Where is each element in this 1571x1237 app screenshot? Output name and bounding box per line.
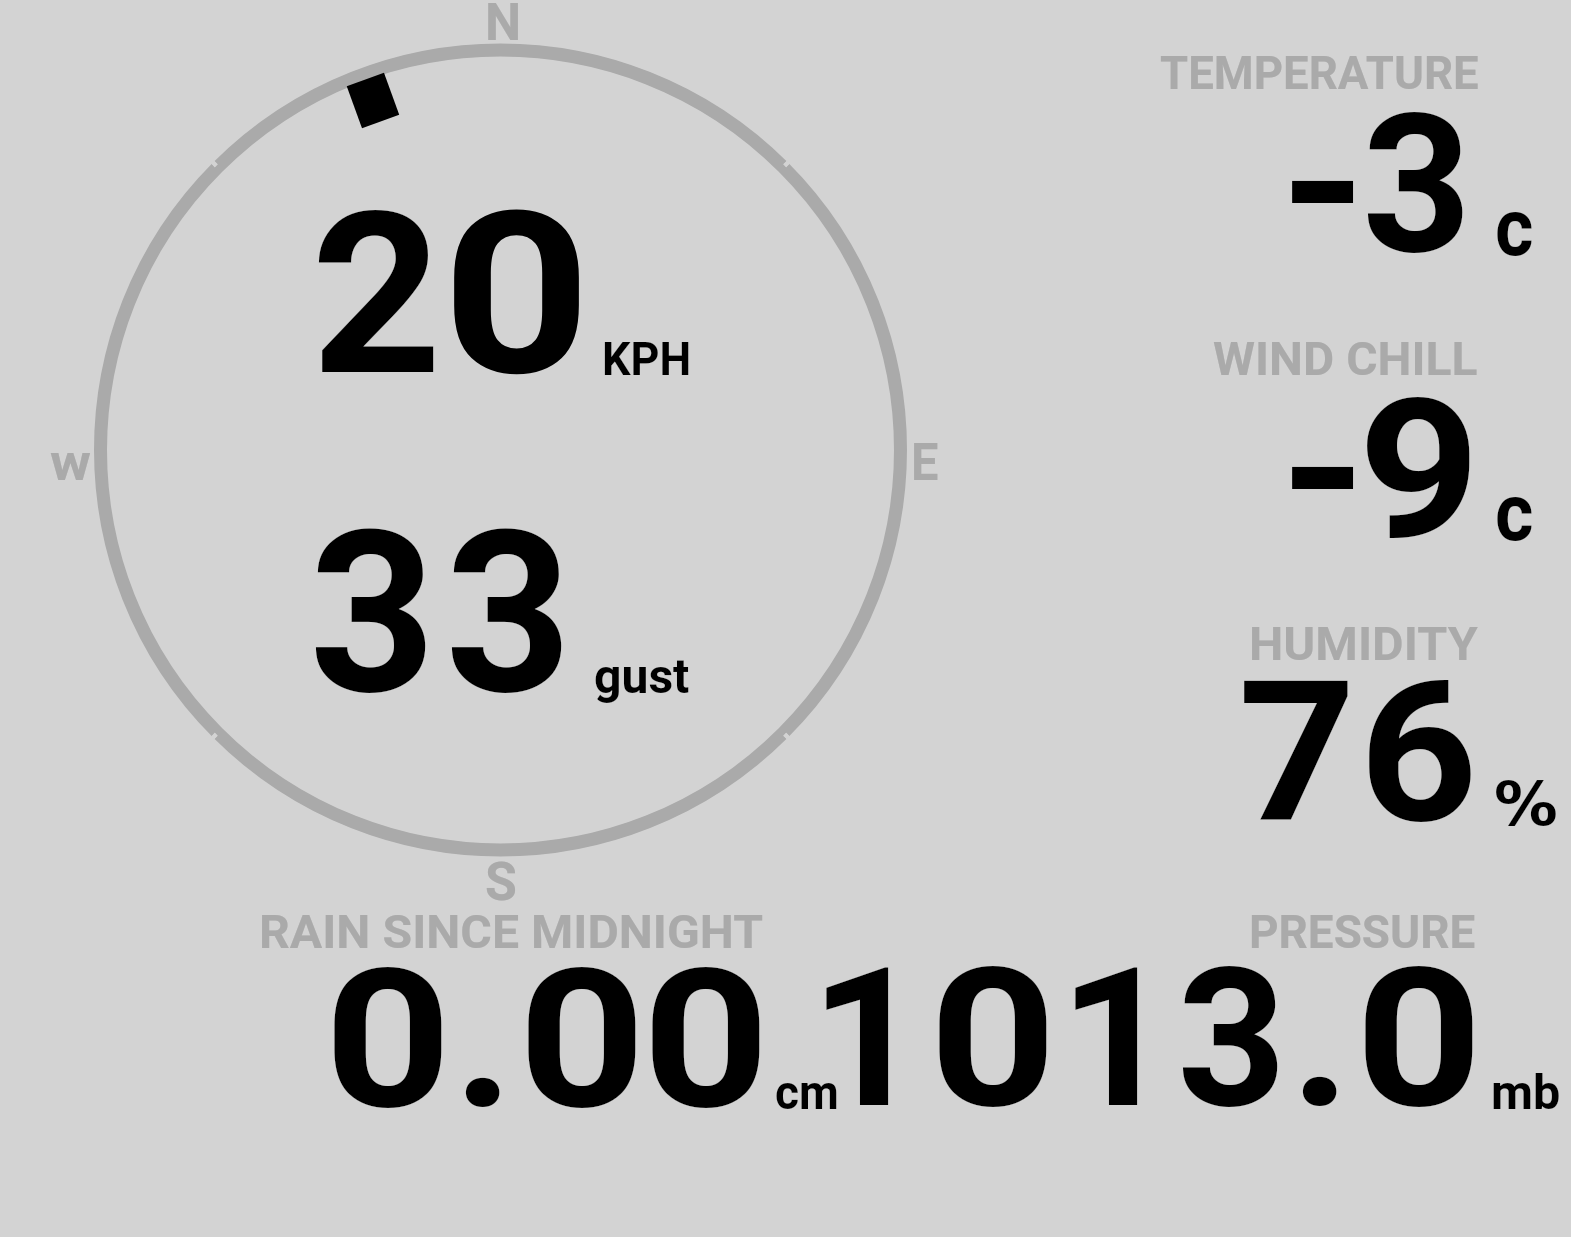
staticText: 6 [1359, 640, 1478, 868]
staticText: gust [594, 649, 690, 705]
staticText: RAIN SINCE MIDNIGHT [259, 905, 763, 960]
staticText: S [485, 851, 517, 913]
staticText: 0 [518, 927, 646, 1153]
staticText: PRESSURE [1249, 905, 1475, 960]
staticText: . [1290, 926, 1352, 1152]
staticText: 0 [642, 927, 770, 1153]
staticText: - [1280, 72, 1367, 299]
button[interactable]: Rain since midnight 0.00 cm [240, 895, 850, 1125]
staticText: HUMIDITY [1249, 617, 1478, 671]
staticText: 0 [1355, 926, 1483, 1152]
staticText: 7 [1238, 640, 1356, 868]
staticText: c [1495, 466, 1534, 559]
staticText: 3 [445, 483, 572, 746]
button[interactable]: Temperature -3 degrees [1100, 20, 1571, 285]
staticText: KPH [602, 331, 692, 386]
staticText: % [1494, 768, 1558, 839]
button[interactable]: Humidity 76 percent [1100, 590, 1571, 855]
button[interactable]: Wind gust 33 [96, 450, 906, 854]
staticText: . [453, 927, 515, 1153]
staticText: 0 [324, 927, 452, 1153]
staticText: 1 [1059, 926, 1174, 1152]
staticText: w [50, 432, 92, 493]
staticText: 3 [1362, 72, 1472, 299]
staticText: c [1495, 181, 1534, 274]
button[interactable]: Pressure 1013.0 mb [850, 895, 1571, 1125]
staticText: 1 [810, 926, 925, 1152]
staticText: 0 [929, 926, 1057, 1152]
staticText: - [1280, 358, 1367, 585]
staticText: 2 [311, 163, 443, 427]
staticText: TEMPERATURE [1160, 47, 1479, 100]
staticText: 9 [1358, 358, 1480, 585]
staticText: N [485, 0, 522, 53]
button[interactable]: Wind chill -9 degrees [1100, 305, 1571, 570]
staticText: WIND CHILL [1213, 333, 1478, 386]
staticText: 3 [309, 483, 436, 746]
staticText: 3 [1177, 926, 1287, 1152]
staticText: E [911, 432, 938, 492]
staticText: 0 [442, 163, 592, 427]
staticText: cm [775, 1065, 839, 1120]
button[interactable]: Wind speed 20 KPH [96, 50, 906, 450]
staticText: mb [1491, 1065, 1561, 1120]
